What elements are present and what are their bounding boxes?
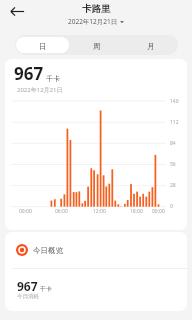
staticText: 28 [170,182,176,189]
staticText: 56 [170,161,176,168]
staticText: 月 [147,42,155,51]
staticText: 967 [17,278,38,294]
staticText: 967 [14,62,44,85]
staticText: 18:00 [130,208,143,215]
staticText: 2022年12月21日 [68,17,118,26]
staticText: 今日消耗 [17,293,39,300]
staticText: 84 [170,140,176,147]
staticText: 2022年12月21日 [17,86,63,94]
staticText: 06:00 [55,208,68,215]
staticText: 千卡 [46,74,60,83]
button[interactable]: 2022年12月21日 [68,17,124,26]
button[interactable]: 周 [71,37,123,53]
staticText: 12:00 [93,208,106,215]
staticText: 0 [170,203,173,210]
staticText: 00:00 [152,208,165,215]
staticText: 112 [170,119,179,126]
button[interactable]: 日 [16,37,69,53]
button[interactable]: 月 [125,37,177,53]
staticText: 千卡 [40,285,52,293]
staticText: 00:00 [19,208,32,215]
staticText: 日 [39,42,47,51]
staticText: 140 [170,98,179,105]
staticText: 周 [93,42,101,51]
staticText: 今日概览 [33,246,63,255]
button[interactable]: Back [8,2,27,21]
staticText: 卡路里 [82,3,111,15]
button[interactable]: 今日概览 [5,232,187,268]
